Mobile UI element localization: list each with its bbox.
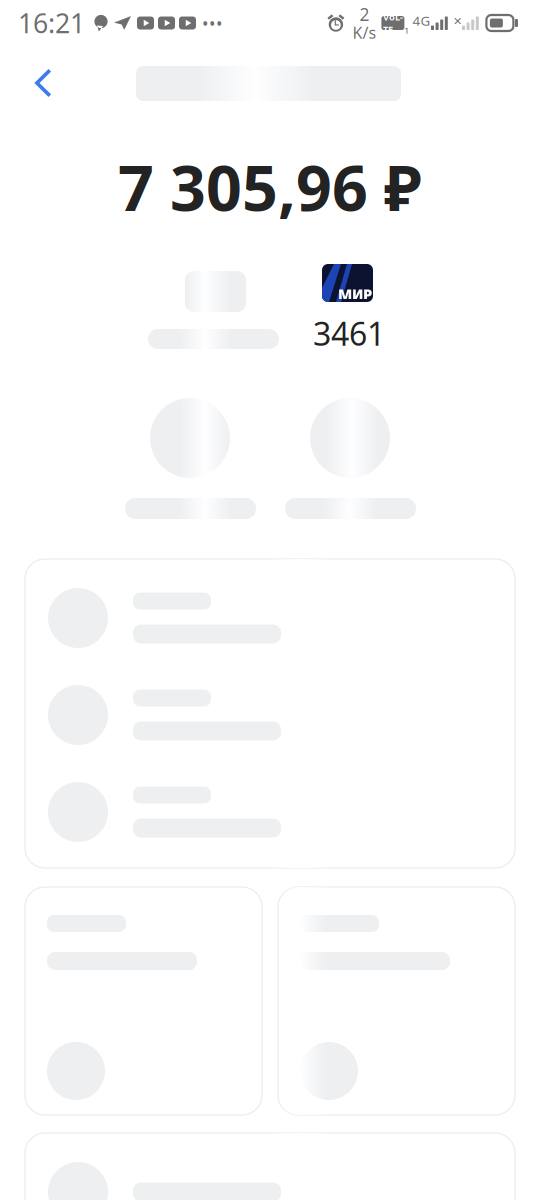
- staticText: ₁: [404, 19, 408, 35]
- staticText: 4G: [412, 12, 430, 29]
- staticText: 7 305,96 ₽: [118, 145, 422, 228]
- staticText: 16:21: [18, 5, 85, 41]
- staticText: МИР: [338, 284, 372, 303]
- staticText: 3461: [313, 312, 385, 354]
- staticText: VoLTE: [383, 11, 403, 35]
- button[interactable]: Back: [14, 60, 72, 106]
- staticText: 2: [359, 3, 369, 26]
- staticText: •••: [202, 11, 223, 34]
- staticText: K/s: [352, 22, 376, 43]
- staticText: ×: [453, 11, 461, 30]
